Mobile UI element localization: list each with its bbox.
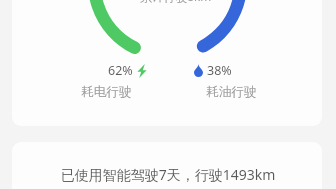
- staticText: 累计行驶8km: [140, 0, 212, 4]
- button[interactable]: 已使用智能驾驶7天，行驶1493km: [12, 142, 324, 189]
- staticText: 耗油行驶: [206, 84, 257, 100]
- staticText: 耗电行驶: [81, 84, 132, 100]
- staticText: 已使用智能驾驶7天，行驶1493km: [12, 165, 324, 184]
- other: Fuel: [194, 64, 203, 77]
- other: Electric power: [137, 64, 147, 78]
- button[interactable]: 62%: [108, 62, 147, 79]
- button[interactable]: Fuel: [194, 62, 232, 79]
- staticText: 62%: [108, 62, 133, 79]
- staticText: 38%: [207, 62, 232, 79]
